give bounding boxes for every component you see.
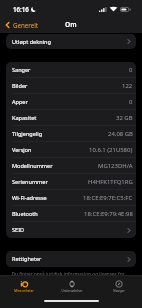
button[interactable]: Sanger (6, 62, 136, 78)
staticText: SEID (12, 226, 25, 234)
button[interactable]: Utløpt dekning (6, 34, 136, 49)
staticText: Rettigheter (12, 255, 42, 263)
staticText: Mine enheter (14, 289, 34, 293)
staticText: Serienummer (12, 178, 48, 186)
button[interactable]: Modellnummer (6, 158, 136, 174)
staticText: Tilgjengelig (12, 130, 43, 138)
button[interactable]: Generelt (5, 21, 39, 29)
staticText: 0 (129, 98, 133, 106)
button[interactable]: SEID (6, 222, 136, 238)
staticText: Naviger (113, 289, 125, 293)
staticText: 122 (122, 82, 133, 90)
button[interactable]: Mine enheter (0, 280, 48, 293)
staticText: Om (65, 20, 77, 29)
staticText: Apper (12, 98, 28, 106)
staticText: H4HFK1TFQ1RG (88, 178, 133, 186)
button[interactable]: Bluetooth (6, 206, 136, 222)
button[interactable]: Naviger (95, 280, 142, 293)
button[interactable]: Rettigheter (6, 251, 136, 267)
staticText: Wi-Fi-adresse (12, 194, 47, 202)
staticText: MG123DH/A (98, 162, 133, 170)
staticText: Utløpt dekning (12, 38, 51, 46)
staticText: Bluetooth (12, 210, 38, 218)
button[interactable]: Kapasitet (6, 110, 136, 126)
staticText: 16:16 (13, 5, 29, 13)
button[interactable]: Versjon (6, 142, 136, 158)
button[interactable]: Undersøkelser (48, 280, 95, 293)
button[interactable]: Tilgjengelig (6, 126, 136, 142)
staticText: Du finner også juridisk informasjon og l… (7, 271, 129, 278)
button[interactable]: Bilder (6, 78, 136, 94)
staticText: 18:CE:E9:79:4E:98 (84, 210, 133, 218)
staticText: 0 (129, 66, 133, 74)
staticText: 18:CE:E9:7E:C5:FC (83, 194, 133, 202)
staticText: Bilder (12, 82, 28, 90)
staticText: 10.6.1 (21U580) (89, 146, 133, 154)
staticText: Undersøkelser (61, 289, 83, 293)
staticText: 32 GB (116, 114, 133, 122)
staticText: Generelt (13, 21, 39, 29)
staticText: Modellnummer (12, 162, 53, 170)
staticText: Kapasitet (12, 114, 37, 122)
staticText: Versjon (12, 146, 32, 154)
button[interactable]: Apper (6, 94, 136, 110)
staticText: 24,08 GB (108, 130, 133, 138)
button[interactable]: Serienummer (6, 174, 136, 190)
button[interactable]: Wi-Fi-adresse (6, 190, 136, 206)
staticText: Sanger (12, 66, 31, 74)
